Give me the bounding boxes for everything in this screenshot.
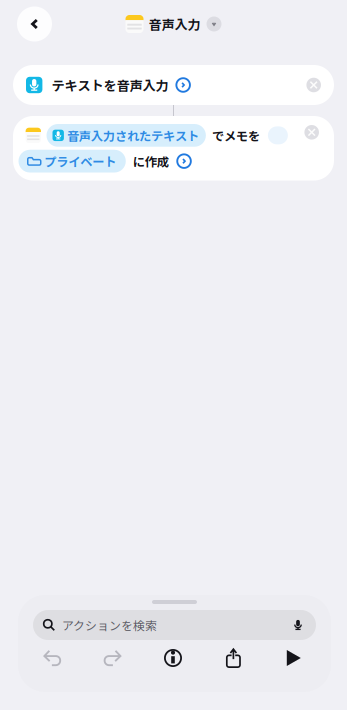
staticText: アクションを検索 bbox=[62, 616, 157, 634]
staticText: に作成 bbox=[133, 152, 169, 170]
staticText: でメモを bbox=[212, 126, 260, 144]
button[interactable]: Back bbox=[17, 6, 52, 41]
button[interactable]: Info bbox=[143, 640, 203, 676]
staticText: 音声入力されたテキスト bbox=[67, 126, 199, 144]
button[interactable]: Redo bbox=[82, 640, 143, 676]
button[interactable]: Undo bbox=[22, 640, 82, 676]
staticText: テキストを音声入力 bbox=[51, 75, 168, 94]
button[interactable]: 音声入力 bbox=[125, 14, 221, 33]
button[interactable]: 音声入力されたテキスト bbox=[13, 116, 334, 180]
button[interactable]: Run bbox=[264, 640, 324, 676]
button[interactable]: Share bbox=[203, 640, 264, 676]
staticText: 音声入力 bbox=[148, 14, 200, 33]
staticText: プライベート bbox=[44, 152, 116, 170]
button[interactable]: アクションを検索 bbox=[33, 610, 316, 640]
button[interactable]: テキストを音声入力 bbox=[13, 65, 334, 105]
